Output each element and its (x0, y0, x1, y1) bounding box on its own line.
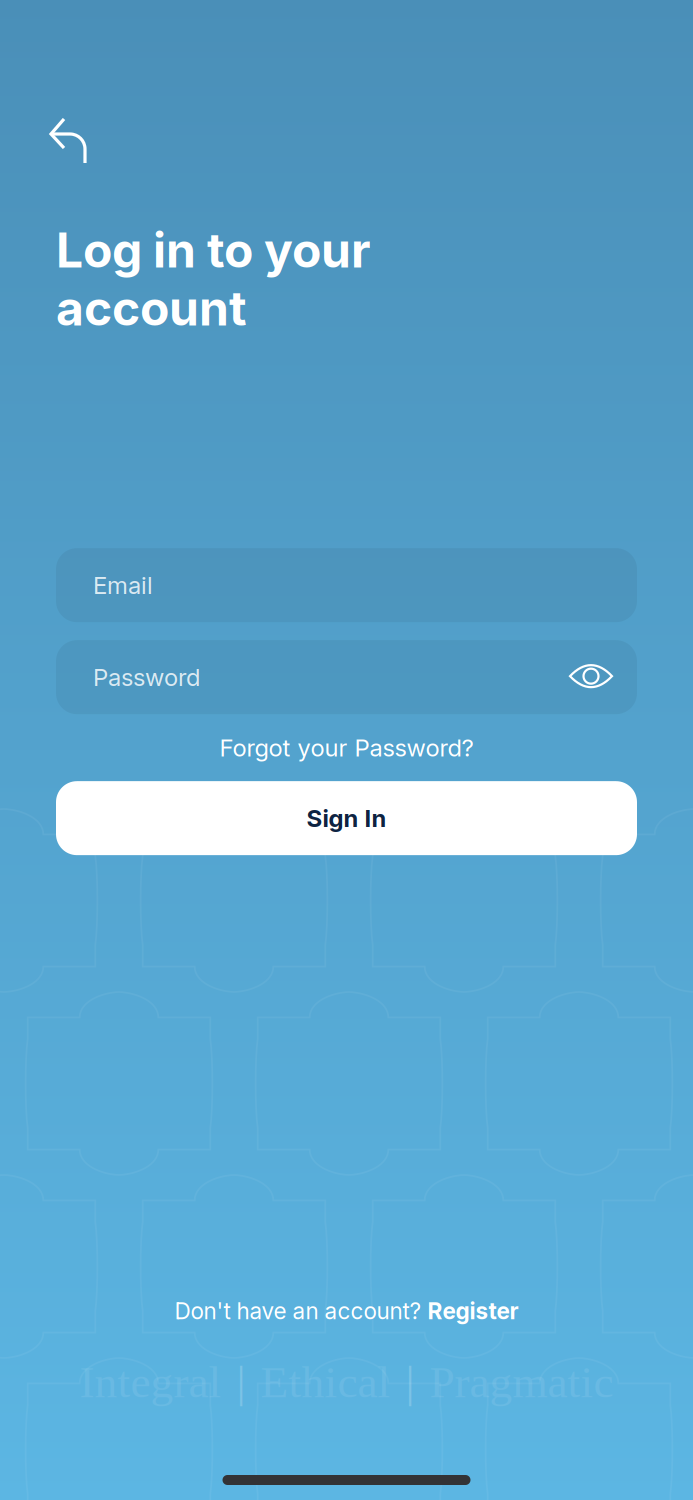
staticText: Register (427, 1297, 518, 1325)
button[interactable]: Show password (569, 662, 613, 692)
button[interactable]: Password (56, 640, 637, 714)
button[interactable]: Email (56, 548, 637, 622)
staticText: | (236, 1357, 245, 1407)
button[interactable]: Don't have an account? (0, 1294, 693, 1328)
button[interactable]: Sign In (56, 781, 637, 855)
staticText: Log in to your account (56, 221, 371, 337)
staticText: Integral (79, 1357, 221, 1407)
staticText: Forgot your Password? (219, 733, 473, 762)
button[interactable]: Back (44, 111, 100, 167)
staticText: | (405, 1357, 414, 1407)
staticText: Ethical (260, 1357, 390, 1407)
button[interactable]: Forgot your Password? (56, 714, 637, 781)
staticText: Email (93, 571, 153, 600)
staticText: Sign In (306, 804, 386, 833)
staticText: Pragmatic (429, 1357, 613, 1407)
staticText: Password (93, 663, 200, 692)
staticText: Don't have an account? (174, 1297, 427, 1325)
